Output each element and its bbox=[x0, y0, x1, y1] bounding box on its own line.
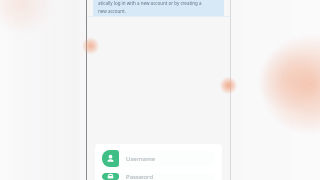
staticText: Password bbox=[126, 173, 154, 180]
staticText: Username bbox=[126, 155, 156, 163]
other: Password bbox=[102, 173, 119, 180]
staticText: atically log in with a new account or by… bbox=[98, 0, 202, 6]
other: Username bbox=[102, 150, 119, 167]
button[interactable]: Username bbox=[102, 150, 215, 167]
button[interactable]: atically log in with a new account or by… bbox=[93, 0, 224, 16]
button[interactable]: Password bbox=[102, 173, 215, 180]
staticText: new account. bbox=[98, 8, 126, 13]
